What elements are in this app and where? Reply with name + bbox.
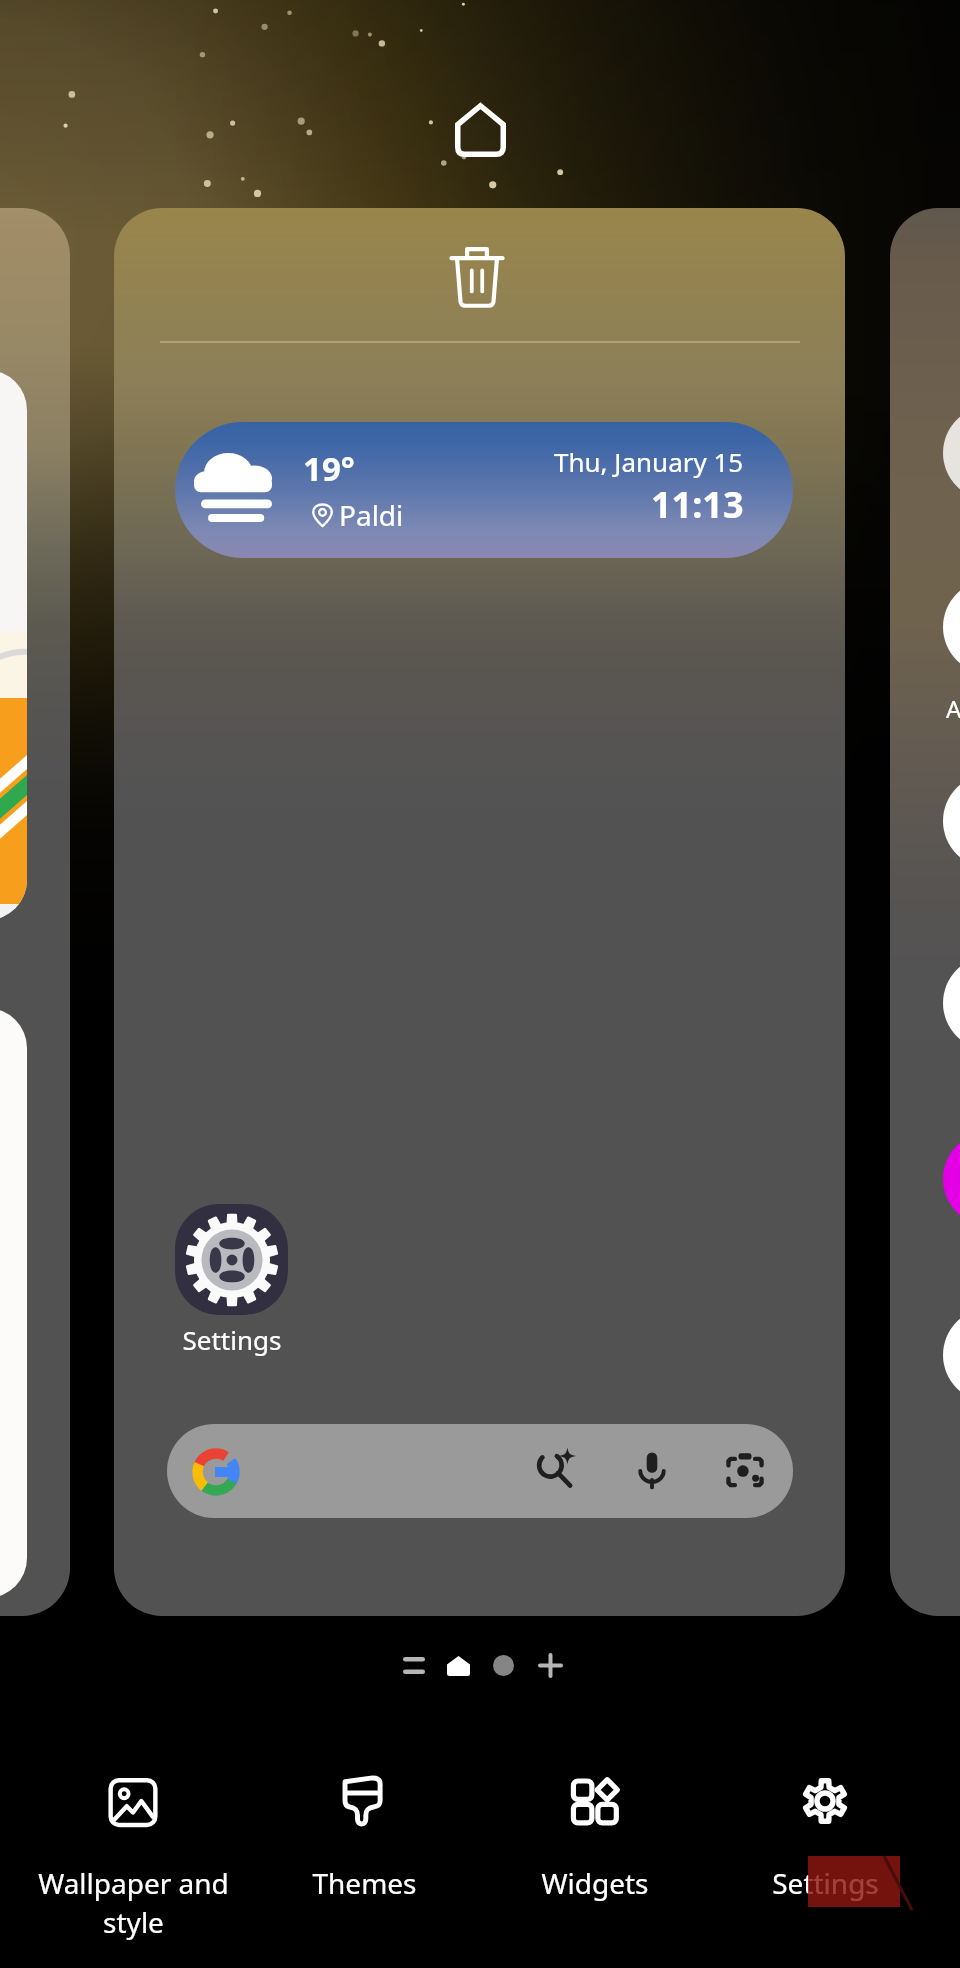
staticText: Thu, January 15 [554,444,744,479]
button[interactable]: Page 2 [480,1642,527,1689]
staticText: Themes [312,1864,417,1902]
staticText: Settings [157,1322,307,1357]
button[interactable]: App list [390,1642,437,1689]
button[interactable]: Add page [527,1642,574,1689]
button[interactable]: Settings [157,1196,307,1356]
button[interactable] [0,208,70,1616]
staticText: Widgets [541,1864,649,1902]
button[interactable]: Settings [710,1764,940,1964]
button[interactable]: Remove page [114,208,845,1616]
button[interactable]: Au [890,208,960,1616]
button[interactable]: Wallpaper and style [18,1764,248,1964]
button[interactable]: Remove page [439,232,515,320]
staticText: Au [946,692,960,725]
button[interactable]: Home page [435,1642,482,1689]
button[interactable]: Search [167,1424,793,1518]
staticText: Settings [772,1864,879,1902]
staticText: 19° [303,446,355,491]
staticText: Wallpaper and style [38,1864,229,1941]
button[interactable]: Home screen [445,95,515,165]
button[interactable]: Widgets [480,1764,710,1964]
staticText: Paldi [339,496,404,534]
button[interactable]: Themes [249,1764,479,1964]
staticText: 11:13 [651,480,744,529]
button[interactable]: 19° [175,422,793,558]
